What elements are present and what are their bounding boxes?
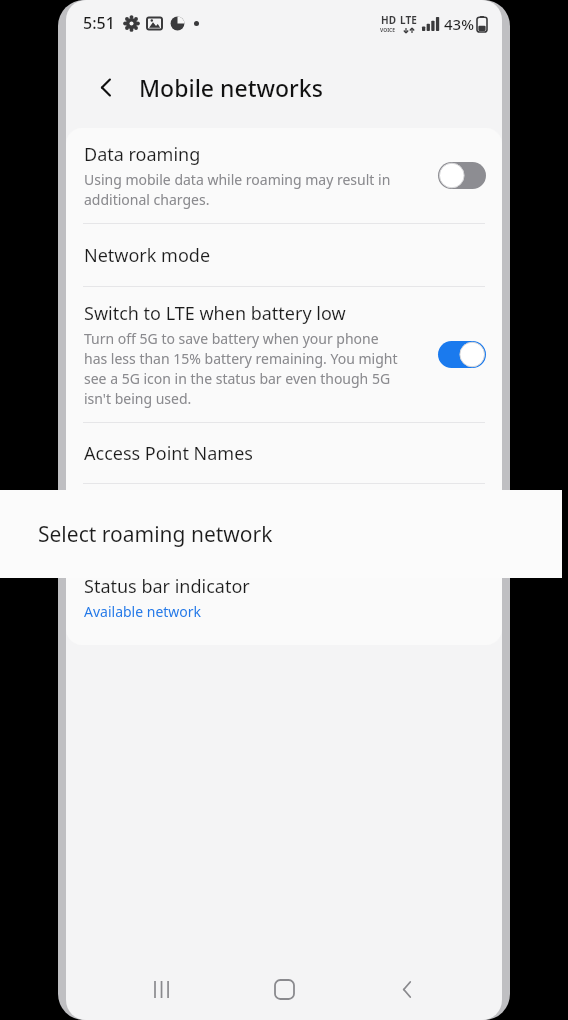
button[interactable]: Back <box>380 962 434 1016</box>
button[interactable]: Home <box>257 962 311 1016</box>
staticText: Available network <box>84 602 202 621</box>
staticText: Using mobile data while roaming may resu… <box>84 170 391 209</box>
staticText: Status bar indicator <box>84 574 250 599</box>
staticText: Data roaming <box>84 142 201 167</box>
staticText: LTE <box>400 13 417 27</box>
button[interactable]: Select roaming network <box>66 484 502 558</box>
button[interactable]: Toggle off <box>438 162 486 189</box>
button[interactable]: Switch to LTE when battery low <box>66 287 502 422</box>
staticText: Select roaming network <box>84 509 285 534</box>
staticText: 5:51 <box>83 12 115 34</box>
button[interactable]: Recent apps <box>135 962 189 1016</box>
staticText: HD <box>381 13 396 27</box>
staticText: Network mode <box>84 243 211 268</box>
button[interactable]: Access Point Names <box>66 423 502 483</box>
staticText: Turn off 5G to save battery when your ph… <box>84 329 398 408</box>
button[interactable]: Network mode <box>66 224 502 286</box>
staticText: VOICE <box>380 27 396 34</box>
button[interactable]: Back <box>86 67 126 107</box>
staticText: Switch to LTE when battery low <box>84 301 346 326</box>
staticText: 43% <box>444 14 474 34</box>
staticText: Mobile networks <box>139 72 323 103</box>
staticText: Select roaming network <box>38 520 273 549</box>
staticText: Access Point Names <box>84 441 253 466</box>
button[interactable]: Status bar indicator <box>66 559 502 631</box>
button[interactable]: Data roaming <box>66 128 502 223</box>
button[interactable]: Toggle on <box>438 341 486 368</box>
button[interactable]: Select roaming network <box>0 490 562 578</box>
